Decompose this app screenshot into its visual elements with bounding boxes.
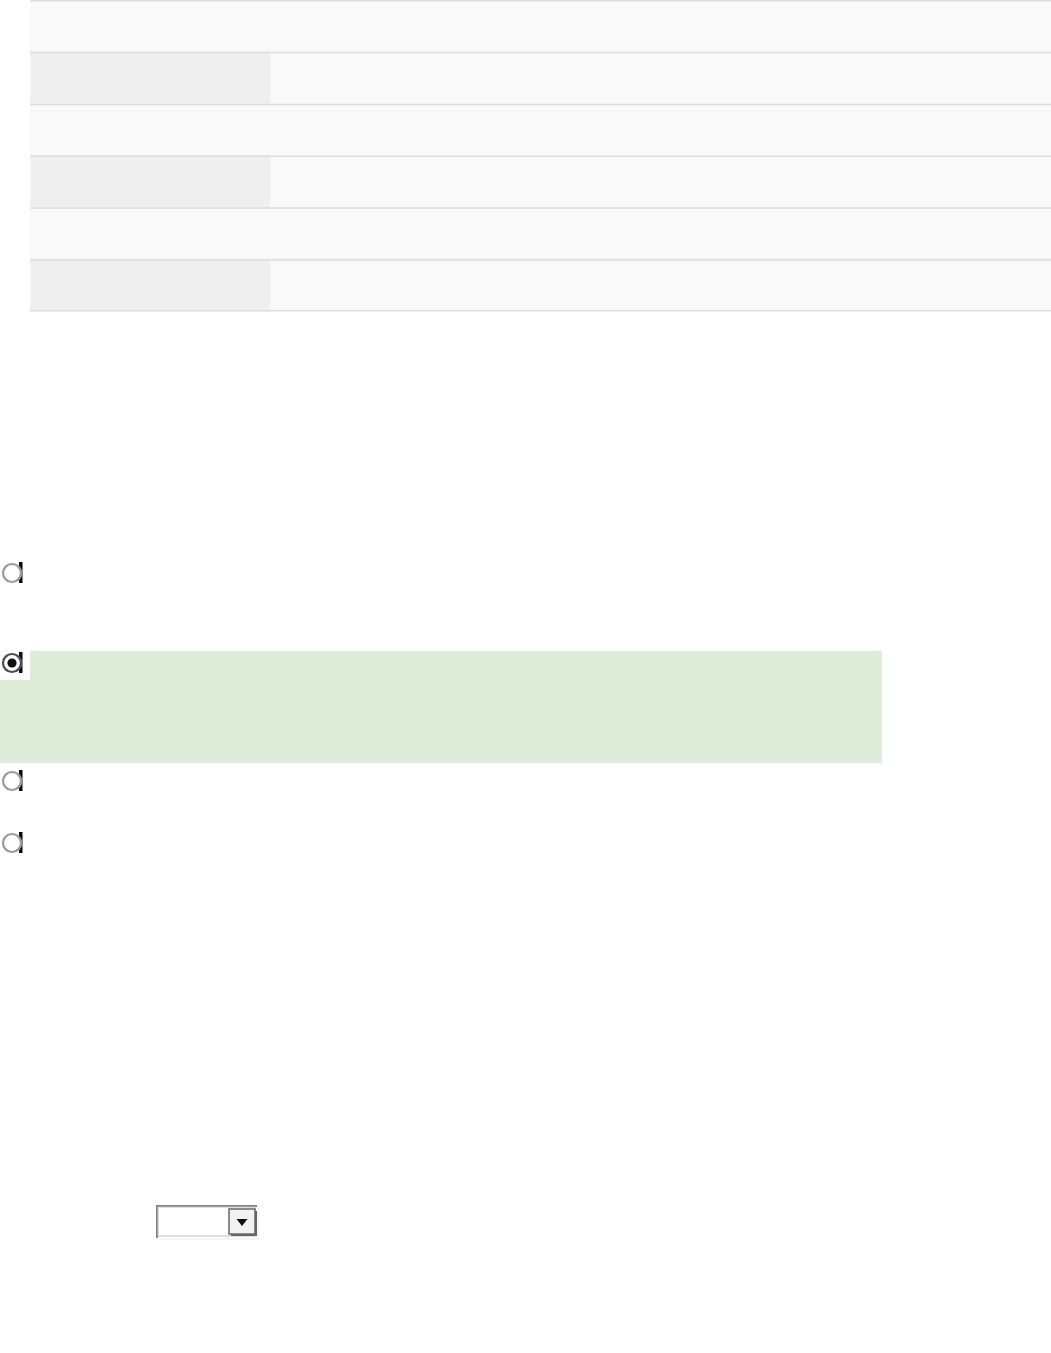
button[interactable]: Option 1 — [2, 562, 28, 588]
button[interactable]: Option 3 — [2, 770, 28, 796]
button[interactable]: Option 4 — [2, 832, 28, 858]
button[interactable]: Option 2 (selected) — [2, 652, 28, 678]
button[interactable]: Dropdown selector — [156, 1205, 259, 1240]
